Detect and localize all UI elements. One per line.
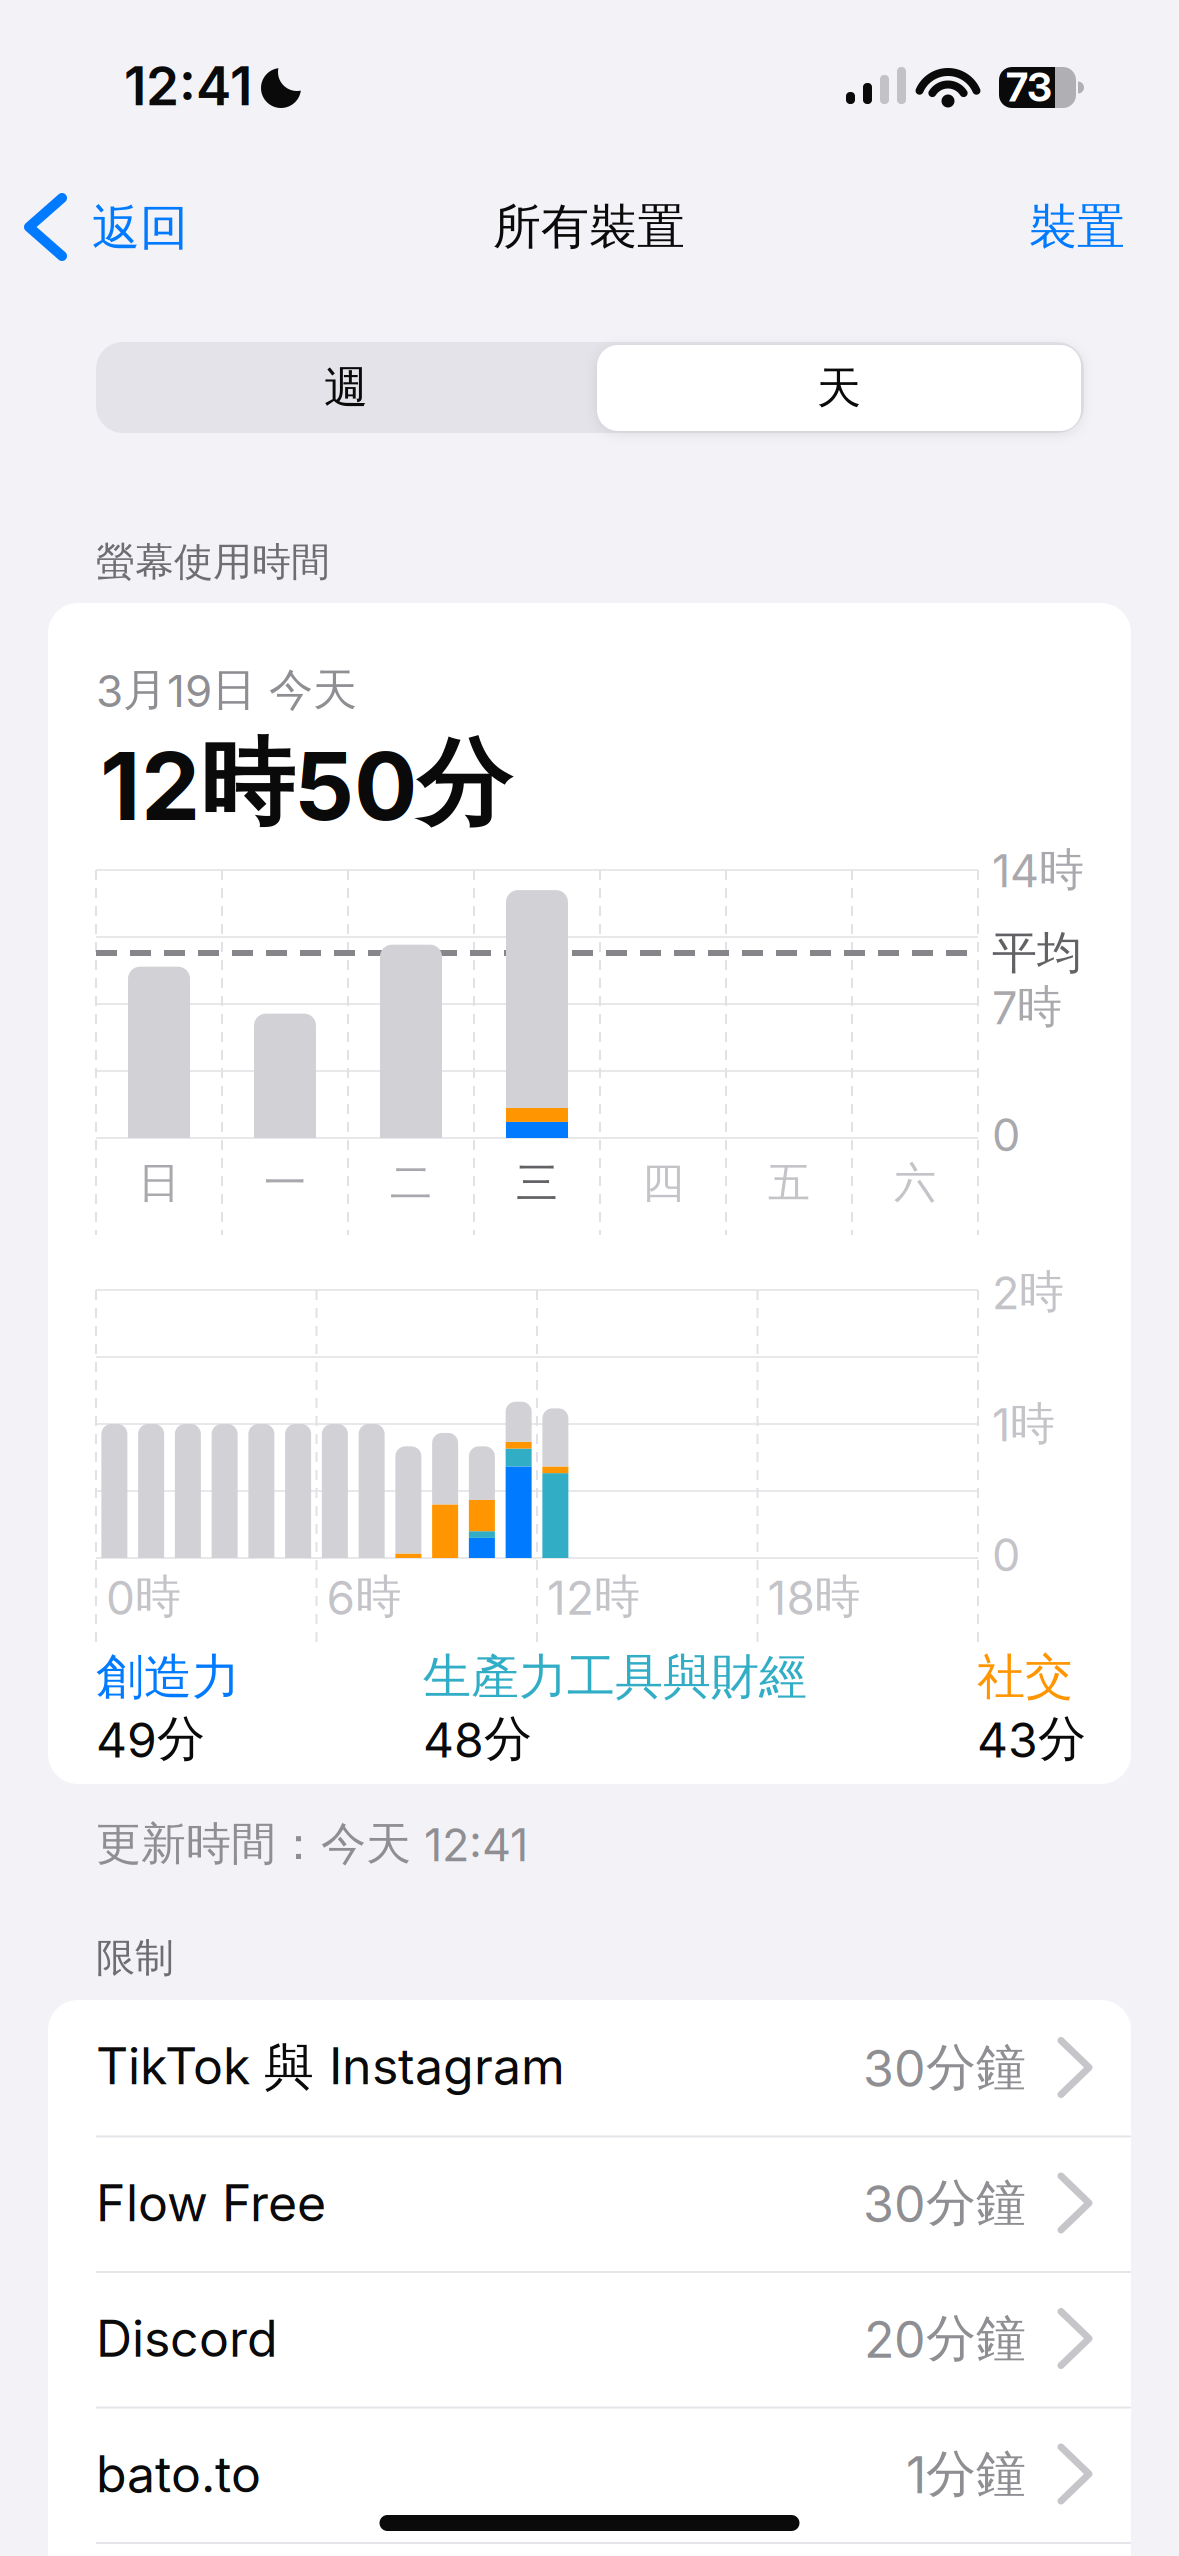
staticText: 30分鐘 [863, 2037, 1026, 2098]
button[interactable]: 裝置 [1029, 197, 1125, 256]
staticText: 48分 [423, 1709, 532, 1768]
staticText: 0 [992, 1528, 1020, 1582]
staticText: 3月19日 今天 [96, 663, 357, 717]
staticText: 天 [817, 361, 861, 415]
button[interactable]: TikTok 與 Instagram [48, 2000, 1131, 2135]
staticText: 週 [324, 360, 368, 414]
staticText: 所有裝置 [493, 197, 685, 256]
staticText: 6時 [326, 1569, 401, 1625]
staticText: 螢幕使用時間 [96, 538, 330, 586]
staticText: Discord [96, 2309, 278, 2368]
button[interactable]: Discord [48, 2271, 1131, 2406]
button[interactable]: 天 [597, 345, 1081, 431]
staticText: 一 [264, 1157, 306, 1209]
staticText: 六 [894, 1157, 936, 1209]
staticText: 2時 [992, 1264, 1064, 1320]
staticText: 四 [642, 1157, 684, 1209]
staticText: 0 [992, 1108, 1020, 1162]
staticText: 限制 [96, 1934, 174, 1982]
staticText: 30分鐘 [863, 2172, 1026, 2234]
staticText: 20分鐘 [864, 2308, 1026, 2369]
staticText: 12時50分 [100, 726, 511, 842]
staticText: 平均 [992, 925, 1082, 981]
button[interactable]: 週 [101, 342, 591, 433]
staticText: 生產力工具與財經 [423, 1647, 807, 1706]
staticText: 返回 [92, 198, 188, 257]
staticText: 二 [390, 1157, 432, 1209]
button[interactable]: Flow Free [48, 2135, 1131, 2271]
staticText: 三 [516, 1157, 558, 1209]
staticText: 18時 [767, 1569, 860, 1625]
staticText: TikTok 與 Instagram [96, 2037, 565, 2098]
staticText: 49分 [96, 1709, 205, 1768]
staticText: bato.to [96, 2444, 261, 2503]
staticText: 14時 [992, 842, 1084, 898]
staticText: 12:41 [124, 55, 252, 117]
staticText: 12時 [547, 1569, 640, 1625]
staticText: 0時 [106, 1569, 181, 1625]
staticText: 五 [768, 1157, 810, 1209]
staticText: 7時 [992, 979, 1062, 1035]
staticText: Flow Free [96, 2173, 326, 2232]
staticText: 創造力 [96, 1647, 240, 1706]
button[interactable]: bato.to [48, 2406, 1131, 2542]
staticText: 日 [138, 1157, 180, 1209]
staticText: 73 [1006, 63, 1052, 111]
staticText: 更新時間：今天 12:41 [96, 1816, 528, 1872]
staticText: 1分鐘 [906, 2443, 1026, 2505]
staticText: 裝置 [1029, 197, 1125, 256]
staticText: 43分 [977, 1709, 1086, 1768]
button[interactable]: Back [24, 177, 234, 277]
staticText: 1時 [992, 1396, 1055, 1452]
staticText: 社交 [977, 1647, 1073, 1706]
